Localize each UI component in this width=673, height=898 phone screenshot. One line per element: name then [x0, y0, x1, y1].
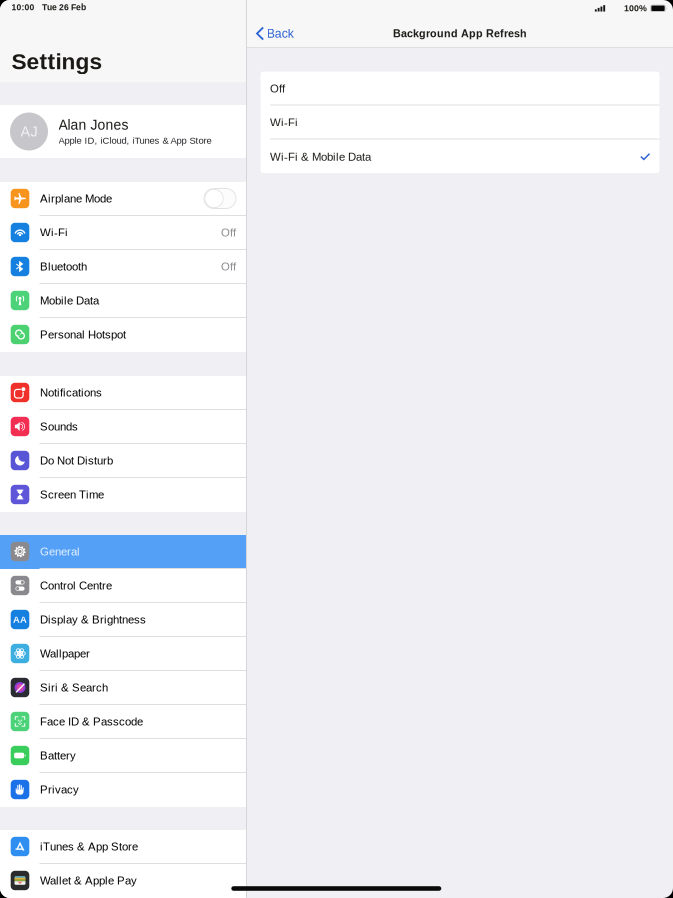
button[interactable]: Screen Time	[0, 478, 246, 512]
staticText: Privacy	[40, 783, 79, 796]
staticText: Alan Jones	[58, 117, 128, 133]
button[interactable]: Back	[247, 19, 304, 47]
staticText: Wallet & Apple Pay	[40, 874, 137, 887]
staticText: Personal Hotspot	[40, 328, 126, 341]
staticText: AA	[13, 614, 27, 625]
staticText: AJ	[20, 123, 37, 140]
button[interactable]: Notifications	[0, 376, 246, 410]
staticText: Wi-Fi	[40, 226, 68, 239]
staticText: Apple ID, iCloud, iTunes & App Store	[58, 135, 211, 146]
staticText: Face ID & Passcode	[40, 715, 143, 728]
staticText: Mobile Data	[40, 294, 99, 307]
staticText: Screen Time	[40, 488, 104, 501]
staticText: Display & Brightness	[40, 613, 146, 626]
staticText: Sounds	[40, 420, 78, 433]
button[interactable]: Wi-Fi	[260, 105, 659, 139]
button[interactable]: General	[0, 535, 246, 569]
staticText: Do Not Disturb	[40, 454, 113, 467]
staticText: Control Centre	[40, 579, 112, 592]
staticText: Notifications	[40, 386, 102, 399]
staticText: Wallpaper	[40, 647, 90, 660]
staticText: Bluetooth	[40, 260, 87, 273]
staticText: Off	[221, 260, 236, 273]
staticText: Tue 26 Feb	[42, 3, 86, 12]
button[interactable]: Airplane Mode	[0, 182, 246, 216]
button[interactable]: Sounds	[0, 410, 246, 444]
button[interactable]: Off	[260, 71, 659, 105]
staticText: 10:00	[11, 3, 34, 12]
button[interactable]: AJ	[0, 105, 246, 158]
staticText: Off	[270, 82, 285, 95]
staticText: Wi-Fi	[270, 116, 298, 129]
staticText: Wi-Fi & Mobile Data	[270, 150, 371, 163]
staticText: Airplane Mode	[40, 192, 112, 205]
staticText: Background App Refresh	[393, 27, 527, 39]
staticText: Battery	[40, 749, 76, 762]
button[interactable]: Siri & Search	[0, 671, 246, 705]
staticText: iTunes & App Store	[40, 840, 138, 853]
button[interactable]: AA	[0, 603, 246, 637]
staticText: Back	[267, 27, 294, 40]
button[interactable]: Privacy	[0, 773, 246, 807]
button[interactable]: Wi-Fi & Mobile Data	[260, 139, 659, 173]
button[interactable]: Bluetooth	[0, 250, 246, 284]
staticText: General	[40, 545, 80, 558]
button[interactable]: Wallet & Apple Pay	[0, 864, 246, 898]
button[interactable]: Battery	[0, 739, 246, 773]
staticText: Settings	[11, 49, 102, 74]
staticText: Off	[221, 226, 236, 239]
button[interactable]: Wallpaper	[0, 637, 246, 671]
button[interactable]: Personal Hotspot	[0, 318, 246, 352]
button[interactable]: Do Not Disturb	[0, 444, 246, 478]
button[interactable]: Mobile Data	[0, 284, 246, 318]
button[interactable]: Face ID & Passcode	[0, 705, 246, 739]
staticText: 100%	[624, 3, 647, 13]
button[interactable]: Control Centre	[0, 569, 246, 603]
button[interactable]: iTunes & App Store	[0, 830, 246, 864]
button[interactable]: Wi-Fi	[0, 216, 246, 250]
staticText: Siri & Search	[40, 681, 108, 694]
